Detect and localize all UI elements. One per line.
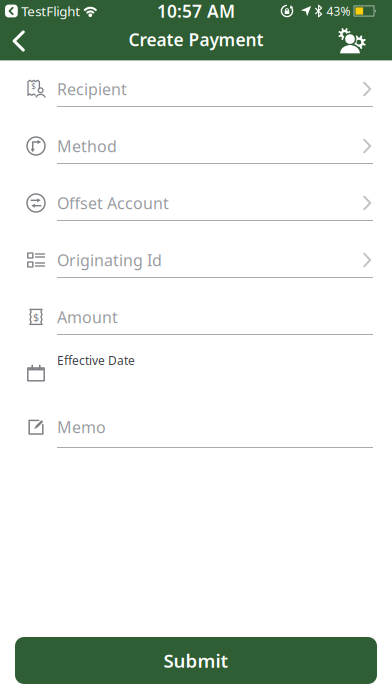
button[interactable]: Effective Date xyxy=(0,346,392,399)
staticText: Originating Id xyxy=(57,249,162,271)
button[interactable]: TestFlight xyxy=(5,2,98,20)
button[interactable]: Submit xyxy=(0,637,392,684)
staticText: Memo xyxy=(57,416,106,438)
staticText: Offset Account xyxy=(57,192,169,214)
staticText: Amount xyxy=(57,306,118,328)
staticText: Submit xyxy=(163,648,228,673)
staticText: 43% xyxy=(326,3,350,19)
staticText: 10:57 AM xyxy=(157,0,235,22)
button[interactable]: Method xyxy=(0,118,392,175)
staticText: Recipient xyxy=(57,78,127,100)
staticText: Method xyxy=(57,135,117,157)
button[interactable]: Memo xyxy=(0,399,392,456)
button[interactable]: Offset Account xyxy=(0,175,392,232)
staticText: TestFlight xyxy=(21,2,80,20)
staticText: Create Payment xyxy=(128,28,263,51)
staticText: $ xyxy=(31,81,36,91)
staticText: $ xyxy=(33,310,39,324)
button[interactable] xyxy=(0,30,25,51)
button[interactable]: $ xyxy=(0,289,392,346)
button[interactable] xyxy=(339,28,392,53)
button[interactable]: Originating Id xyxy=(0,232,392,289)
button[interactable]: $ xyxy=(0,61,392,118)
staticText: Effective Date xyxy=(57,352,135,368)
